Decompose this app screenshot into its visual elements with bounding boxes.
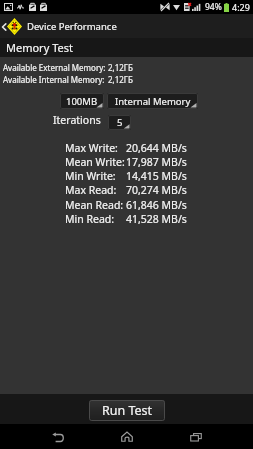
- staticText: Min Read:: [65, 212, 115, 226]
- staticText: 5: [117, 116, 123, 129]
- button[interactable]: Recent apps: [161, 424, 230, 449]
- staticText: 2,12ГБ: [108, 74, 133, 85]
- staticText: 70,274 MB/s: [126, 183, 187, 197]
- staticText: Device Performance: [27, 20, 117, 33]
- staticText: 17,987 MB/s: [126, 155, 187, 169]
- button[interactable]: Back: [23, 424, 92, 449]
- staticText: Available External Memory:: [3, 62, 106, 73]
- button[interactable]: 5: [108, 115, 131, 130]
- staticText: Min Write:: [65, 169, 116, 183]
- staticText: Run Test: [102, 402, 153, 419]
- button[interactable]: Run Test: [89, 400, 165, 421]
- staticText: 100MB: [66, 95, 98, 108]
- staticText: 61,846 MB/s: [126, 198, 187, 212]
- staticText: Max Write:: [65, 141, 118, 155]
- staticText: Max Read:: [65, 183, 117, 197]
- staticText: 41,528 MB/s: [126, 212, 187, 226]
- button[interactable]: Internal Memory: [107, 93, 198, 109]
- staticText: Iterations: [53, 113, 101, 127]
- staticText: Mean Write:: [65, 155, 125, 169]
- staticText: Mean Read:: [65, 198, 124, 212]
- staticText: 14,415 MB/s: [126, 169, 187, 183]
- staticText: 4:29: [232, 1, 250, 13]
- button[interactable]: Device Performance, navigate up: [0, 14, 253, 38]
- button[interactable]: 100MB: [60, 93, 104, 109]
- staticText: Internal Memory: [115, 95, 191, 108]
- staticText: 94%: [205, 1, 222, 13]
- staticText: 20,644 MB/s: [126, 141, 187, 155]
- staticText: 2,12ГБ: [108, 62, 133, 73]
- staticText: Available Internal Memory:: [3, 74, 105, 85]
- button[interactable]: Home: [92, 424, 161, 449]
- staticText: Memory Test: [6, 40, 73, 55]
